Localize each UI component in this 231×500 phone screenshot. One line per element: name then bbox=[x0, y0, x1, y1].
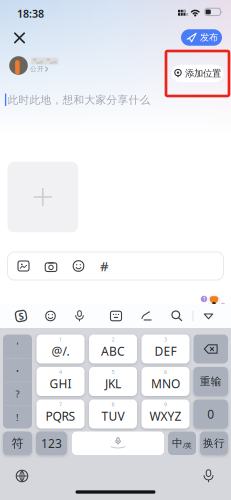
button[interactable]: Space bbox=[72, 431, 164, 455]
staticText: 4 bbox=[59, 368, 62, 376]
staticText: 6 bbox=[164, 368, 167, 376]
button[interactable]: Next keyboard bbox=[16, 470, 28, 482]
staticText: 符 bbox=[11, 436, 23, 451]
button[interactable]: 2 bbox=[89, 334, 137, 363]
staticText: 2 bbox=[111, 336, 114, 343]
staticText: GHI bbox=[49, 375, 71, 391]
staticText: WXYZ bbox=[149, 408, 181, 424]
button[interactable]: Voice input bbox=[74, 310, 84, 321]
button[interactable]: 5 bbox=[89, 367, 137, 396]
staticText: 换行 bbox=[203, 437, 225, 450]
button[interactable]: Chinese / English bbox=[168, 431, 196, 455]
button[interactable]: 添加位置 bbox=[171, 65, 223, 82]
staticText: 18:38 bbox=[17, 6, 44, 21]
staticText: 7 bbox=[59, 401, 62, 408]
staticText: ! bbox=[16, 411, 19, 424]
button[interactable]: Punctuation bbox=[3, 334, 32, 428]
button[interactable]: 4 bbox=[36, 367, 84, 396]
button[interactable]: Delete bbox=[193, 334, 228, 363]
button[interactable]: Emoji bbox=[73, 261, 84, 271]
button[interactable]: Search bbox=[172, 311, 182, 321]
button[interactable]: 6 bbox=[141, 367, 189, 396]
staticText: 发布 bbox=[200, 32, 218, 43]
staticText: 此时此地，想和大家分享什么 bbox=[7, 93, 150, 106]
button[interactable]: 换行 bbox=[200, 431, 228, 455]
staticText: 中 bbox=[172, 437, 183, 450]
staticText: 1 bbox=[59, 336, 62, 343]
staticText: ABC bbox=[101, 343, 125, 359]
staticText: ? bbox=[15, 388, 19, 400]
staticText: MNO bbox=[151, 375, 180, 391]
button[interactable]: Hide keyboard bbox=[203, 313, 213, 320]
button[interactable]: 符 bbox=[3, 431, 32, 455]
button[interactable]: Close bbox=[12, 31, 26, 45]
button[interactable]: Dictation bbox=[203, 469, 214, 482]
staticText: 公开 bbox=[30, 65, 44, 73]
button[interactable]: Photo bbox=[18, 261, 29, 271]
button[interactable]: 7 bbox=[36, 399, 84, 428]
staticText: JKL bbox=[105, 375, 121, 391]
button[interactable]: Topic bbox=[100, 257, 109, 275]
staticText: 123 bbox=[41, 435, 62, 451]
staticText: TUV bbox=[101, 408, 124, 424]
staticText: 0 bbox=[207, 406, 214, 422]
staticText: ↑ bbox=[202, 296, 206, 302]
staticText: 8 bbox=[111, 401, 114, 408]
button[interactable]: 发布 bbox=[181, 29, 222, 46]
staticText: @/. bbox=[51, 343, 69, 359]
button[interactable]: Sogou bbox=[14, 309, 27, 322]
button[interactable]: Camera bbox=[45, 261, 57, 272]
button[interactable]: Add photo bbox=[7, 162, 78, 232]
button[interactable]: 3 bbox=[141, 334, 189, 363]
staticText: /英 bbox=[183, 441, 192, 450]
staticText: 重输 bbox=[200, 375, 222, 388]
staticText: 添加位置 bbox=[185, 68, 221, 79]
button[interactable]: Emoji bbox=[46, 311, 55, 321]
staticText: PQRS bbox=[45, 408, 75, 424]
button[interactable]: 重输 bbox=[193, 367, 228, 396]
button[interactable]: Handwriting bbox=[141, 311, 152, 321]
staticText: DEF bbox=[154, 343, 176, 359]
button[interactable]: 123 bbox=[36, 431, 67, 455]
staticText: 9 bbox=[164, 401, 167, 408]
button[interactable]: Keyboard bbox=[110, 311, 121, 321]
button[interactable]: 9 bbox=[141, 399, 189, 428]
button[interactable]: 8 bbox=[89, 399, 137, 428]
staticText: ' bbox=[16, 340, 18, 352]
button[interactable]: 1 bbox=[36, 334, 84, 363]
staticText: S bbox=[18, 310, 23, 322]
staticText: 5 bbox=[111, 368, 114, 376]
staticText: 3 bbox=[164, 336, 167, 343]
staticText: # bbox=[100, 257, 109, 275]
button[interactable]: 0 bbox=[193, 399, 228, 428]
